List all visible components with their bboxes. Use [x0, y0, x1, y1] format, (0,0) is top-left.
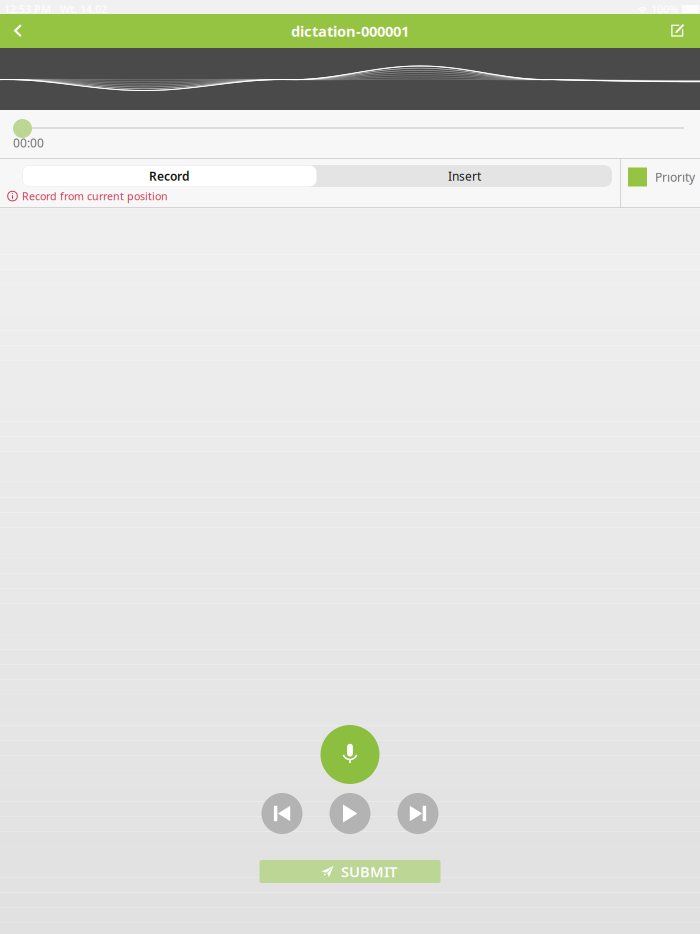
staticText: 00:00 [13, 135, 44, 151]
button[interactable]: Insert [317, 165, 612, 187]
button[interactable]: Priority [628, 166, 700, 188]
button[interactable]: Next [397, 793, 438, 834]
button[interactable]: Record [320, 725, 379, 784]
button[interactable]: Previous [261, 793, 302, 834]
staticText: dictation-000001 [291, 21, 409, 41]
button[interactable]: Play [329, 793, 370, 834]
staticText: Record from current position [22, 189, 168, 203]
button[interactable]: Record [22, 165, 317, 187]
button[interactable]: SUBMIT [259, 860, 440, 883]
staticText: 100% [651, 2, 678, 16]
staticText: 12:53 PM Wt. 14.02 [4, 2, 107, 16]
staticText: Insert [448, 168, 481, 184]
staticText: SUBMIT [341, 862, 397, 881]
staticText: Priority [655, 169, 695, 185]
button[interactable]: Back [0, 14, 36, 48]
button[interactable]: Edit [656, 14, 700, 48]
staticText: Record [149, 168, 190, 184]
